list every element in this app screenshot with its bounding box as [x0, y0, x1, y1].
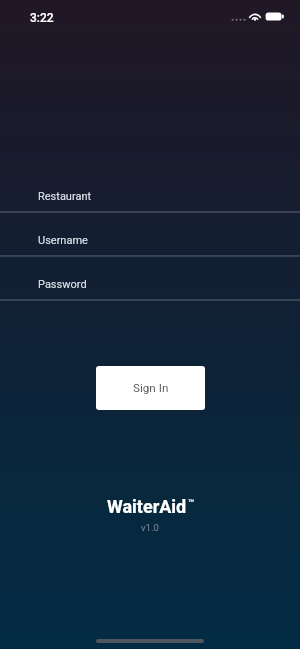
staticText: Password [38, 278, 87, 291]
button[interactable]: Username [0, 213, 300, 257]
other: Wi-Fi [249, 10, 263, 23]
staticText: v1.0 [141, 522, 159, 533]
staticText: WaiterAid [107, 496, 187, 517]
staticText: Username [38, 234, 88, 247]
button[interactable]: Password [0, 257, 300, 301]
staticText: ™ [188, 497, 194, 508]
other: Cellular signal [231, 16, 245, 24]
button[interactable]: Restaurant [0, 169, 300, 213]
staticText: Restaurant [38, 190, 92, 203]
button[interactable]: Sign In [96, 366, 205, 410]
staticText: Sign In [133, 381, 169, 395]
staticText: 3:22 [30, 11, 54, 25]
other: Battery full [265, 12, 285, 21]
